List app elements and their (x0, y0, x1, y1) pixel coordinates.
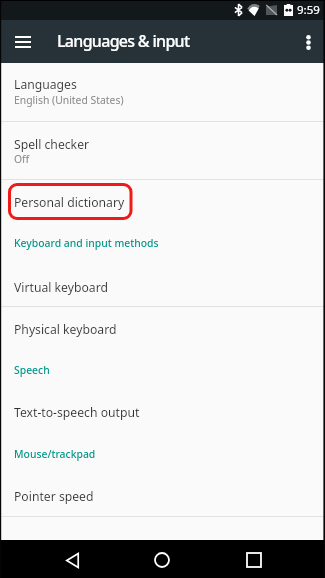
staticText: Spell checker (14, 136, 90, 153)
staticText: Personal dictionary (14, 194, 125, 211)
button[interactable] (0, 393, 325, 435)
staticText: English (United States) (14, 93, 124, 107)
staticText: Virtual keyboard (14, 279, 108, 296)
staticText: Pointer speed (14, 488, 94, 505)
staticText: Mouse/trackpad (14, 447, 96, 461)
button[interactable]: Recent apps (234, 541, 274, 578)
button[interactable] (0, 122, 325, 179)
button[interactable]: More options (291, 25, 325, 59)
staticText: Languages (14, 76, 77, 93)
staticText: Physical keyboard (14, 321, 117, 338)
button[interactable] (0, 266, 325, 306)
button[interactable] (0, 477, 325, 516)
staticText: Languages & input (57, 30, 190, 52)
staticText: 9:59 (297, 2, 320, 18)
button[interactable]: Navigation menu (6, 25, 40, 59)
button[interactable]: Home (142, 541, 182, 578)
staticText: Text-to-speech output (14, 404, 140, 421)
button[interactable] (0, 307, 325, 351)
button[interactable] (0, 180, 325, 224)
button[interactable]: Back (52, 541, 92, 578)
staticText: Keyboard and input methods (14, 236, 159, 250)
staticText: Speech (14, 363, 50, 377)
button[interactable] (0, 63, 325, 121)
staticText: Off (14, 152, 30, 166)
